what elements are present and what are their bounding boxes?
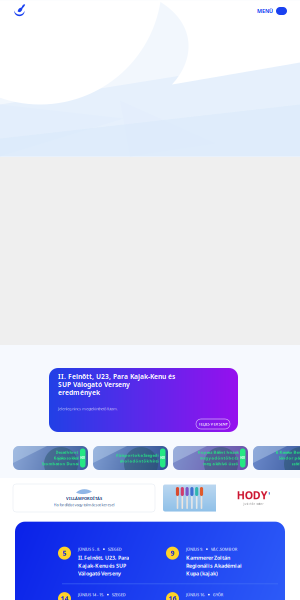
button[interactable]: Villámfordítás hirdetés [13,484,155,512]
staticText: Kopasz Bálint hiszek [197,450,238,455]
button[interactable]: 5 [58,547,166,579]
staticText: SUP Válogató Verseny [58,380,130,389]
staticText: TELJES VERSENY [198,421,227,427]
staticText: Ha fordítást vagy tolmácsot keresel [53,502,114,507]
button[interactable]: Hody hirdetés [163,484,291,511]
staticText: meg a kihívó úszó [202,461,238,466]
staticText: HÍR [240,456,245,460]
staticText: Sándor páros nyert [278,455,300,461]
staticText: HÍR [80,456,85,460]
staticText: GYŐR [213,592,224,597]
staticText: JÚNIUS 14 - 15. [78,592,104,597]
button[interactable]: A Kaiako Bence Tamás [253,446,300,470]
button[interactable]: 16 [166,592,274,600]
button[interactable]: Magyar Kajak-Kenu Szövetség [14,4,26,17]
staticText: Szombaton Dunai [41,461,78,466]
staticText: II. Felnőtt, U23, Para Kajak-Kenu és [58,372,175,381]
staticText: Kajakosokkal [53,455,78,461]
staticText: eredmények [58,388,100,397]
staticText: just ride water [243,502,263,506]
staticText: 5 [62,549,66,558]
staticText: 9 [170,549,174,558]
staticText: ahol a döntők hírei [119,458,158,463]
staticText: JÚNIUS 16. [186,592,205,597]
button[interactable]: 14 [58,592,166,600]
staticText: HÍR [160,456,165,460]
button[interactable]: Decathlont [13,446,88,470]
staticText: 14 [60,594,68,600]
staticText: Kajak-Kenu és SUP [78,562,126,569]
staticText: SZEGED [112,592,126,597]
staticText: JÚNIUS 9. [186,546,203,552]
staticText: JÚNIUS 5 - 8. [78,546,100,552]
staticText: II. Felnőtt, U23, Para [78,554,129,561]
staticText: HODY [237,488,268,502]
staticText: Kupa (kajak) [186,570,218,577]
staticText: szátlövést_ozz [291,461,300,466]
staticText: megy a döntőbe és [199,455,238,461]
staticText: ' [268,490,270,500]
button[interactable]: TELJES VERSENY [196,419,230,429]
button[interactable]: Kopasz Bálint hiszek [173,446,248,470]
staticText: Kammerer Zoltán [186,554,230,561]
staticText: MENÜ [257,7,273,15]
staticText: Regionális Akadémiai [186,562,242,569]
staticText: SZEGED [108,546,122,552]
button[interactable]: 9 [166,547,274,579]
button[interactable]: Menü [257,5,287,17]
staticText: 16 [168,594,176,600]
staticText: VILLÁMFORDÍTÁS [66,496,102,501]
staticText: VÁC-SOMBOR [211,546,238,552]
staticText: Vízisportok a Szegedi [115,452,158,458]
staticText: A Kaiako Bence Tamás [275,450,300,455]
button[interactable]: Vízisportok a Szegedi [93,446,168,470]
staticText: Válogató Verseny [78,570,121,577]
staticText: Decathlont [55,450,78,455]
staticText: Jelenleg nincs megtekinthető futam. [58,406,118,411]
